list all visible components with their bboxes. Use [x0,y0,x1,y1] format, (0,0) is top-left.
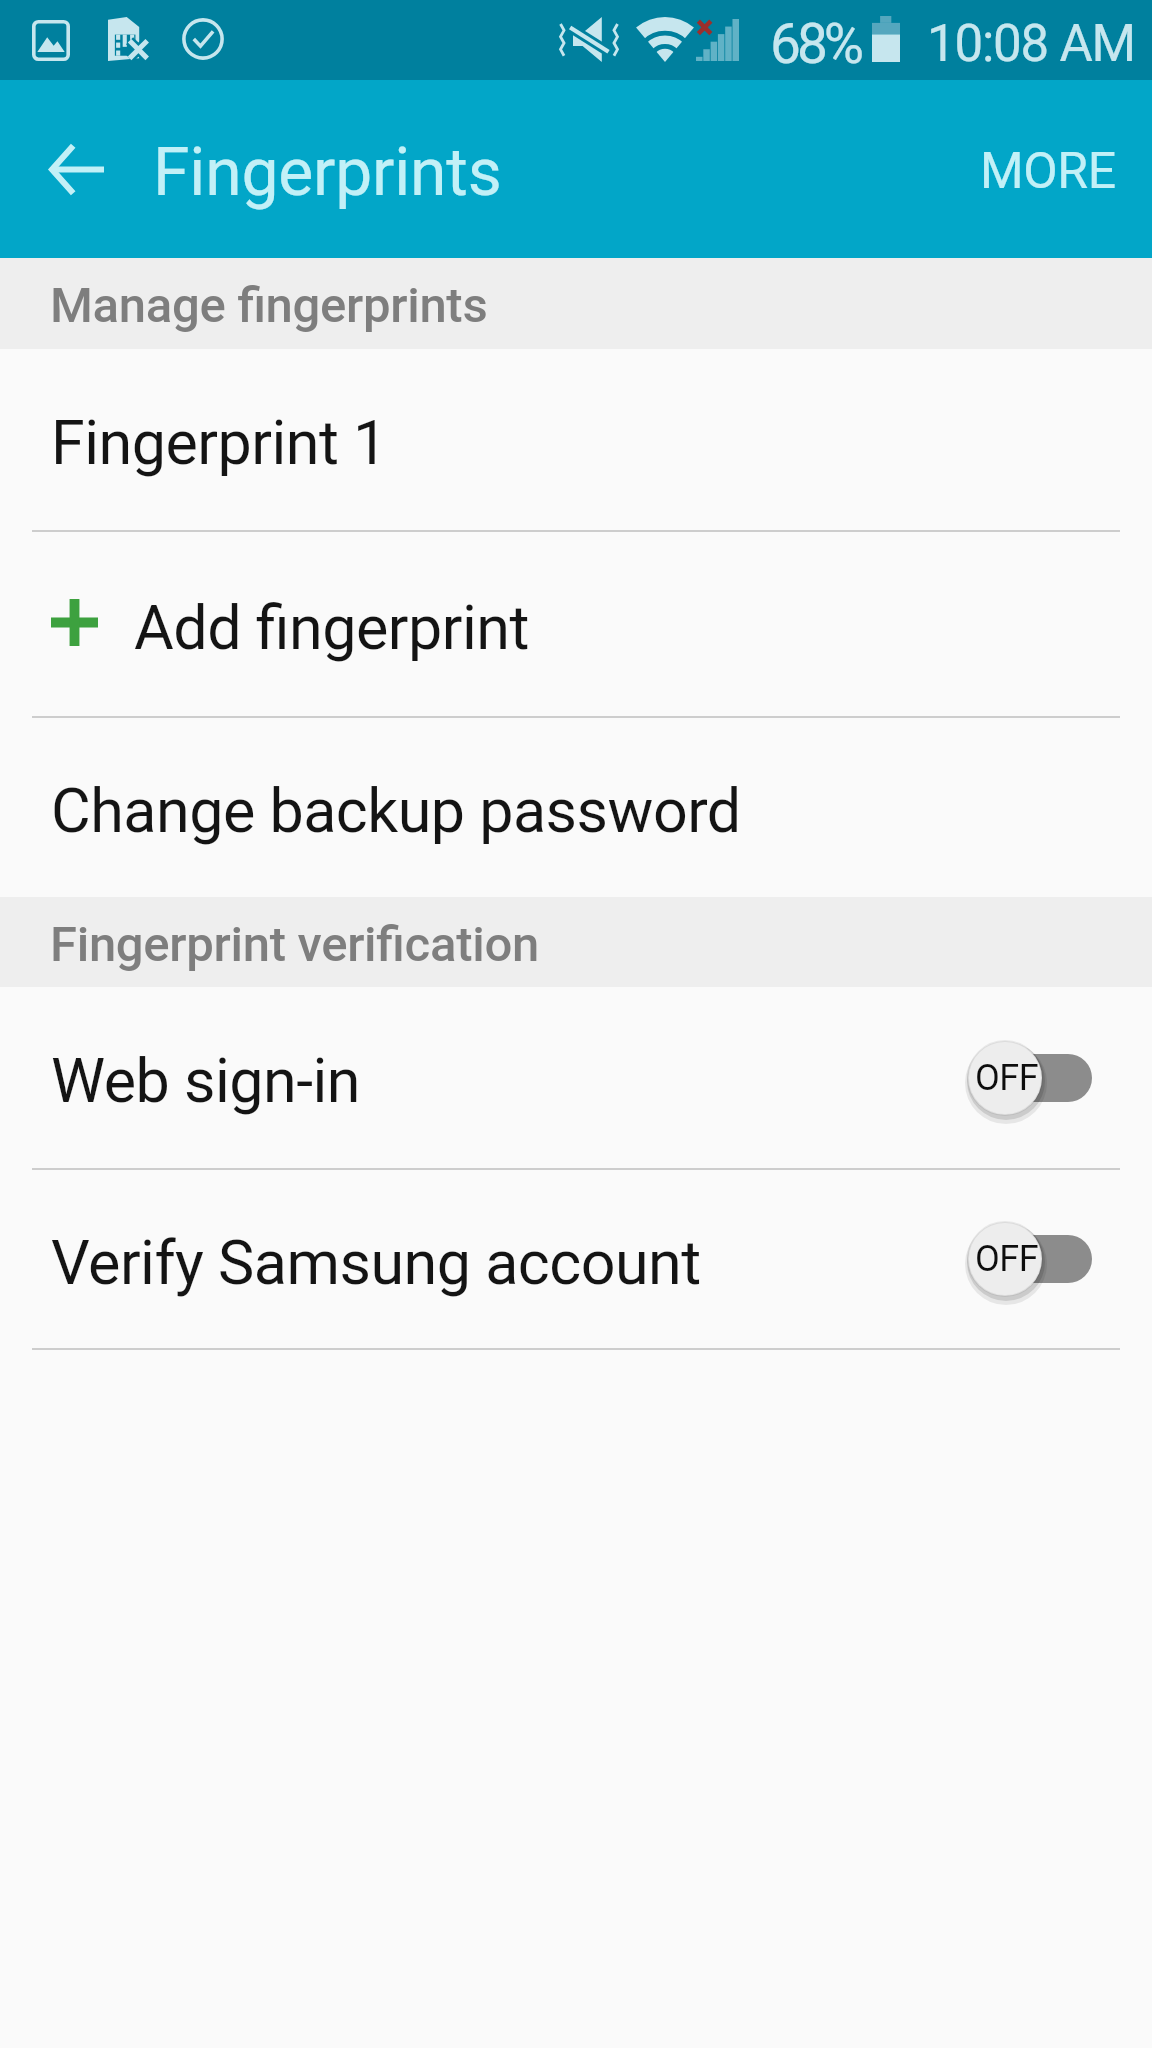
button[interactable]: Web sign-in [0,987,1152,1168]
staticText: Fingerprints [153,134,502,211]
staticText: OFF [975,1057,1039,1099]
staticText: Fingerprint 1 [51,407,387,478]
staticText: Web sign-in [51,1045,361,1116]
button[interactable]: Add fingerprint [0,532,1152,716]
button[interactable]: MORE [940,80,1152,258]
button[interactable]: Verify Samsung account [0,1170,1152,1348]
staticText: 10:08 AM [927,14,1135,74]
button[interactable]: Fingerprint 1 [0,349,1152,530]
staticText: Change backup password [51,775,741,846]
staticText: Verify Samsung account [51,1227,701,1298]
other: Off [968,1035,1092,1121]
staticText: Manage fingerprints [50,277,488,334]
other: Off [968,1216,1092,1302]
staticText: Fingerprint verification [50,916,539,973]
button[interactable]: Navigate up [0,80,152,258]
staticText: 68% [770,12,861,76]
staticText: MORE [980,142,1116,201]
staticText: OFF [975,1238,1039,1280]
staticText: Add fingerprint [134,592,529,663]
button[interactable]: Change backup password [0,718,1152,897]
